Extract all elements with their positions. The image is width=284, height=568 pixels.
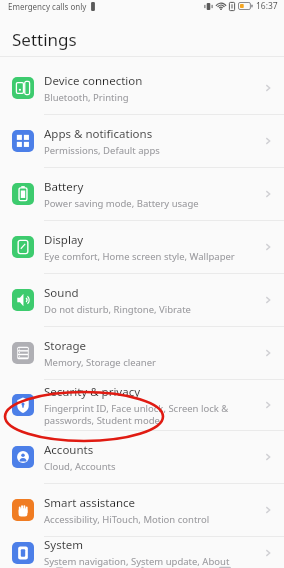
staticText: Do not disturb, Ringtone, Vibrate xyxy=(44,303,191,316)
staticText: Fingerprint ID, Face unlock, Screen lock… xyxy=(44,402,229,427)
staticText: Cloud, Accounts xyxy=(44,460,116,473)
staticText: Smart assistance xyxy=(44,495,136,511)
staticText: Display xyxy=(44,232,84,248)
staticText: Eye comfort, Home screen style, Wallpape… xyxy=(44,250,235,263)
staticText: Permissions, Default apps xyxy=(44,144,160,157)
staticText: Power saving mode, Battery usage xyxy=(44,197,199,210)
staticText: Storage xyxy=(44,338,86,354)
button[interactable]: Display xyxy=(0,221,284,273)
staticText: Sound xyxy=(44,285,79,301)
button[interactable]: Smart assistance xyxy=(0,484,284,536)
button[interactable]: Accounts xyxy=(0,431,284,483)
staticText: Memory, Storage cleaner xyxy=(44,356,156,369)
button[interactable]: System xyxy=(0,537,284,568)
staticText: Accessibility, HiTouch, Motion control xyxy=(44,513,210,526)
staticText: Bluetooth, Printing xyxy=(44,91,129,104)
button[interactable]: Security & privacy xyxy=(0,380,284,430)
button[interactable]: Apps & notifications xyxy=(0,115,284,167)
staticText: Device connection xyxy=(44,73,143,89)
staticText: System xyxy=(44,537,84,553)
staticText: Security & privacy xyxy=(44,384,141,400)
button[interactable]: Device connection xyxy=(0,62,284,114)
button[interactable]: Battery xyxy=(0,168,284,220)
staticText: Settings xyxy=(12,28,77,51)
button[interactable]: Storage xyxy=(0,327,284,379)
staticText: 16:37 xyxy=(256,0,278,12)
staticText: Apps & notifications xyxy=(44,126,153,142)
button[interactable]: Sound xyxy=(0,274,284,326)
staticText: System navigation, System update, About … xyxy=(44,555,230,568)
staticText: Emergency calls only xyxy=(8,1,87,12)
staticText: Accounts xyxy=(44,442,94,458)
staticText: Battery xyxy=(44,179,84,195)
